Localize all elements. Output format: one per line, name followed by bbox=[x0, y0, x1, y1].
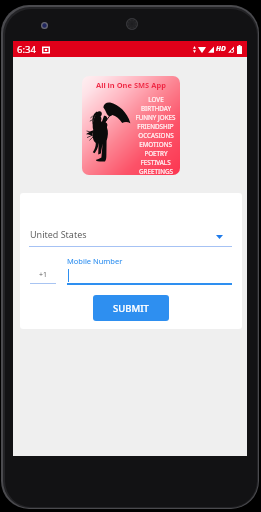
button[interactable]: SUBMIT bbox=[93, 295, 169, 321]
staticText: FUNNY JOKES bbox=[135, 113, 176, 122]
staticText: BIRTHDAY bbox=[141, 104, 171, 113]
staticText: 6:34 bbox=[17, 43, 36, 56]
button[interactable]: Mobile Number bbox=[67, 256, 232, 285]
staticText: All in One SMS App bbox=[96, 80, 166, 90]
staticText: Mobile Number bbox=[67, 256, 123, 266]
other: Select country bbox=[216, 235, 223, 239]
staticText: EMOTIONS bbox=[139, 140, 172, 149]
staticText: GREETINGS bbox=[139, 167, 173, 175]
staticText: LOVE bbox=[148, 95, 164, 104]
staticText: SUBMIT bbox=[113, 302, 149, 315]
staticText: +1 bbox=[39, 270, 48, 280]
button[interactable]: United States bbox=[29, 227, 232, 247]
staticText: POETRY bbox=[144, 149, 168, 158]
staticText: United States bbox=[30, 228, 87, 240]
staticText: OCCASIONS bbox=[138, 131, 174, 140]
staticText: FESTIVALS bbox=[140, 158, 171, 167]
button[interactable]: +1 bbox=[30, 267, 56, 284]
staticText: FRIENDSHIP bbox=[137, 122, 174, 131]
staticText: HD bbox=[216, 44, 226, 54]
